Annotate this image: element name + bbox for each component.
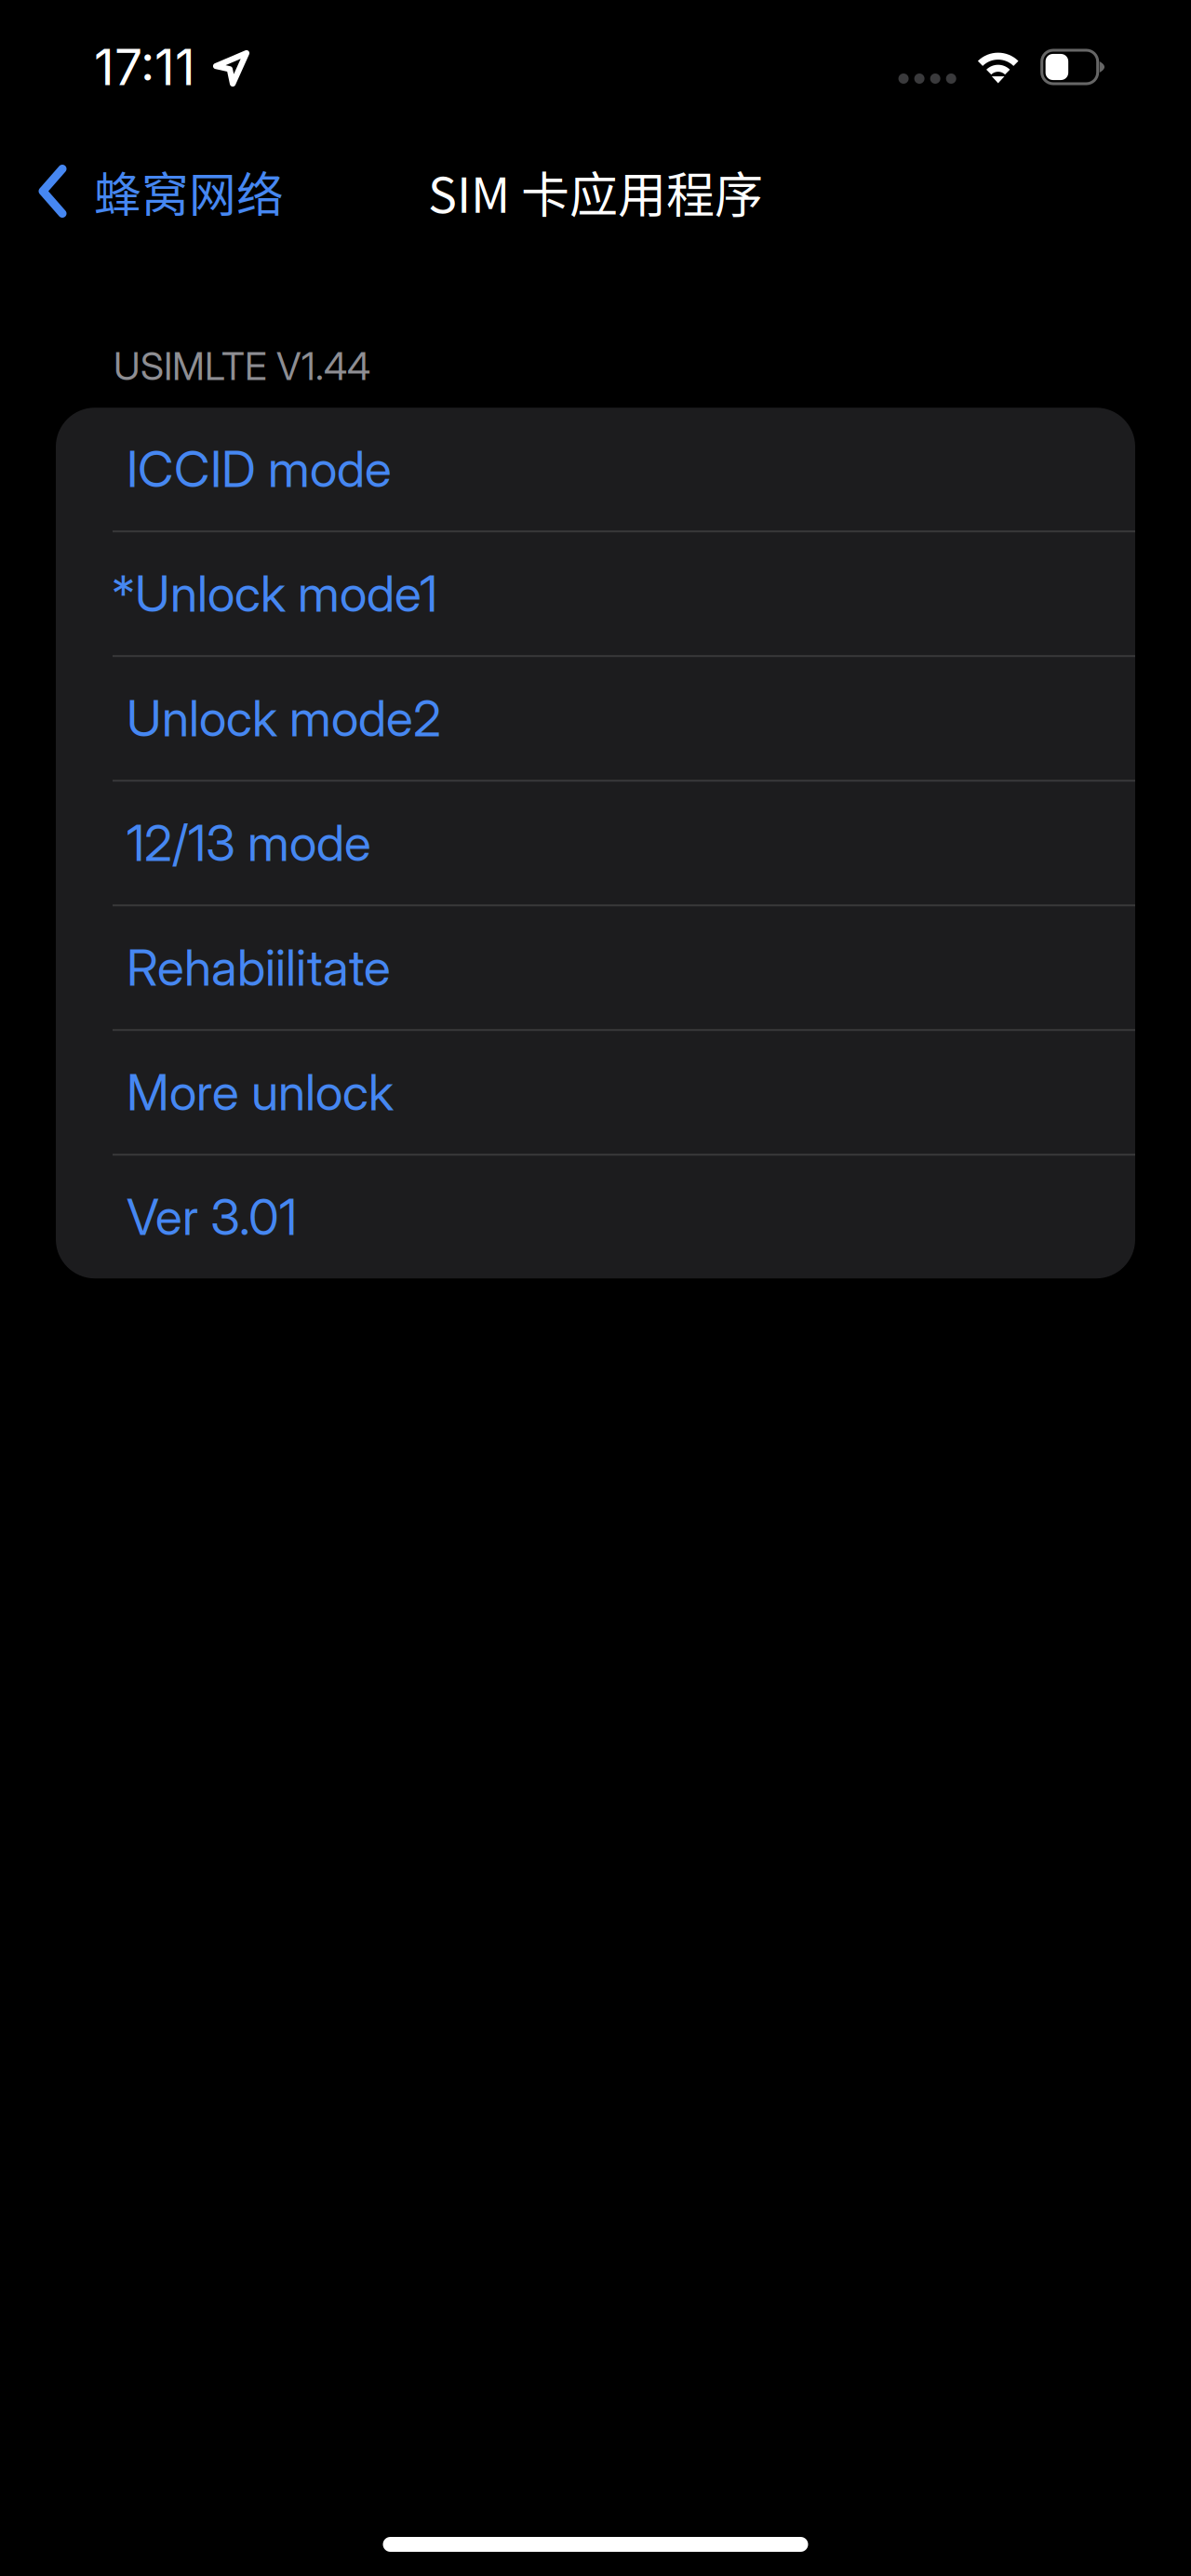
staticText: 蜂窝网络 — [94, 157, 284, 226]
staticText: USIMLTE V1.44 — [114, 343, 370, 389]
staticText: 12/13 mode — [127, 813, 371, 873]
button[interactable]: *Unlock mode1 — [56, 532, 1135, 655]
button[interactable]: 12/13 mode — [56, 782, 1135, 904]
staticText: More unlock — [127, 1062, 394, 1122]
staticText: Unlock mode2 — [127, 688, 441, 748]
button[interactable]: Ver 3.01 — [56, 1156, 1135, 1278]
staticText: Ver 3.01 — [127, 1187, 297, 1247]
staticText: SIM 卡应用程序 — [428, 157, 763, 227]
button[interactable]: Rehabiilitate — [56, 906, 1135, 1029]
button[interactable]: Unlock mode2 — [56, 657, 1135, 780]
button[interactable]: 返回 蜂窝网络 — [0, 146, 302, 237]
staticText: *Unlock mode1 — [112, 564, 437, 624]
button[interactable]: More unlock — [56, 1031, 1135, 1154]
staticText: 17:11 — [94, 37, 195, 97]
button[interactable]: ICCID mode — [56, 408, 1135, 530]
staticText: Rehabiilitate — [127, 938, 391, 998]
staticText: ICCID mode — [127, 439, 392, 499]
